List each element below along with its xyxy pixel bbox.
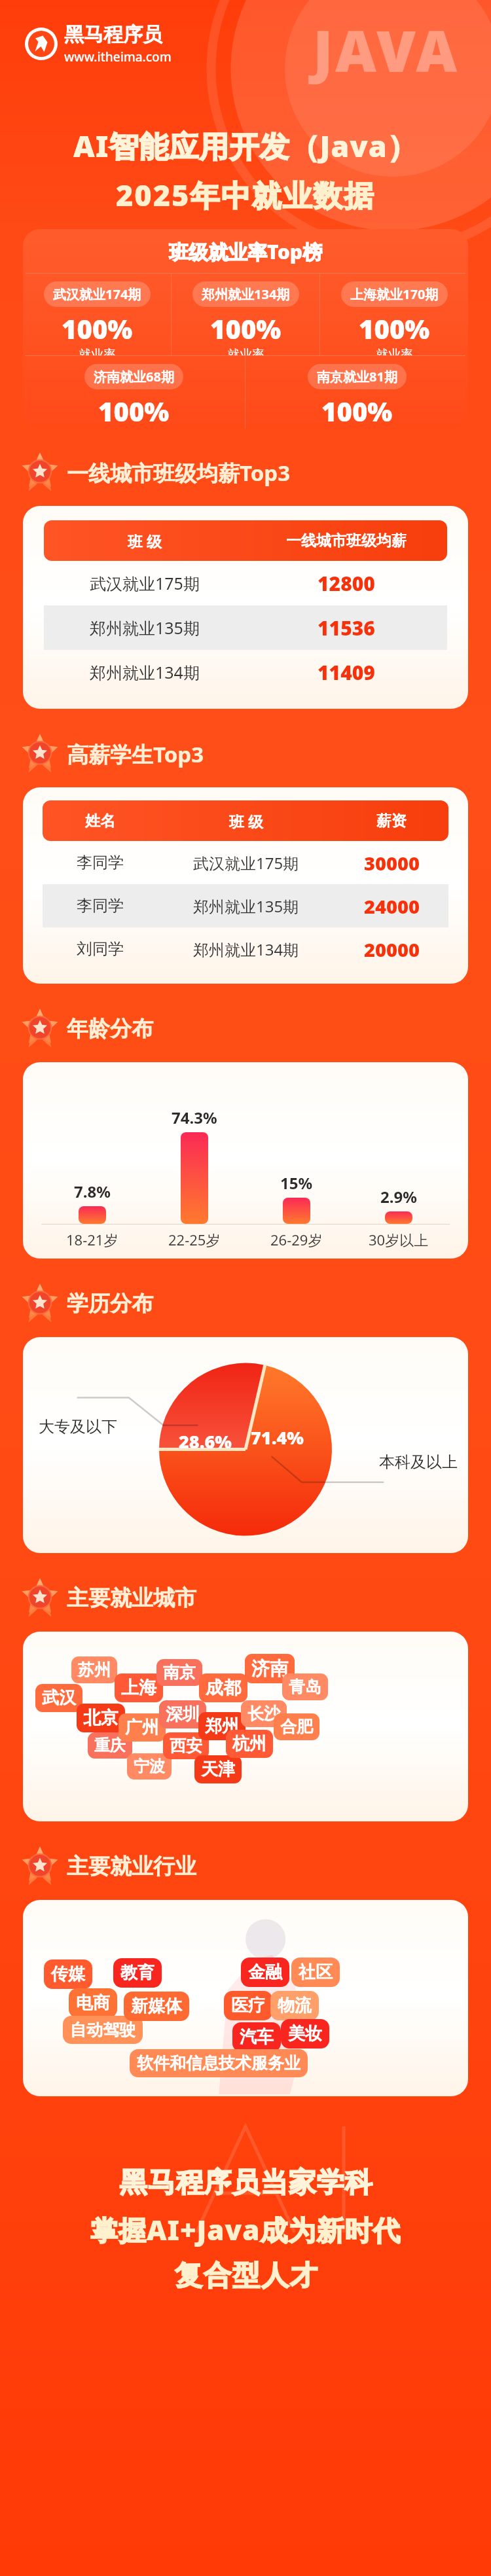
staticText: 金融: [248, 1961, 282, 1983]
button[interactable]: 武汉就业175期: [44, 561, 447, 605]
button[interactable]: 西安: [163, 1732, 209, 1759]
staticText: 11536: [318, 615, 375, 641]
button[interactable]: 刘同学: [43, 927, 448, 971]
button[interactable]: 社区: [291, 1958, 340, 1987]
staticText: 71.4%: [251, 1425, 304, 1450]
button[interactable]: 武汉: [35, 1684, 82, 1712]
staticText: 郑州就业135期: [193, 895, 299, 917]
staticText: 美妆: [288, 2023, 322, 2045]
button[interactable]: 济南就业68期: [23, 356, 245, 429]
button[interactable]: 李同学: [43, 841, 448, 884]
staticText: 郑州就业135期: [90, 617, 200, 639]
button[interactable]: 美妆: [281, 2019, 329, 2048]
staticText: 24000: [364, 893, 420, 919]
staticText: 武汉就业175期: [193, 852, 299, 874]
button[interactable]: 新媒体: [124, 1992, 189, 2021]
staticText: 医疗: [231, 1995, 265, 2016]
staticText: 武汉就业175期: [90, 572, 200, 594]
button[interactable]: 长沙: [241, 1700, 287, 1727]
button[interactable]: 教育: [113, 1958, 162, 1988]
button[interactable]: 杭州: [226, 1730, 273, 1758]
button[interactable]: 电商: [69, 1988, 117, 2018]
button[interactable]: 北京: [77, 1704, 125, 1732]
staticText: 新媒体: [131, 1995, 182, 2017]
staticText: 一线城市班级均薪: [286, 531, 407, 550]
staticText: www.itheima.com: [64, 48, 172, 65]
button[interactable]: 郑州就业135期: [44, 605, 447, 650]
staticText: 年龄分布: [67, 1015, 153, 1043]
staticText: 本科及以上: [379, 1452, 458, 1472]
button[interactable]: 物流: [270, 1991, 319, 2020]
staticText: 就业率: [79, 347, 116, 355]
button[interactable]: 传媒: [44, 1959, 92, 1989]
other: Logo: [25, 27, 58, 60]
button[interactable]: 合肥: [274, 1713, 319, 1740]
staticText: 7.8%: [74, 1181, 111, 1202]
button[interactable]: 医疗: [224, 1991, 272, 2020]
staticText: 姓名: [85, 812, 115, 831]
staticText: 郑州: [205, 1715, 239, 1737]
staticText: 薪资: [376, 812, 407, 831]
staticText: 长沙: [247, 1704, 280, 1724]
staticText: 天津: [201, 1759, 235, 1780]
staticText: 成都: [206, 1677, 241, 1699]
button[interactable]: Logo: [25, 22, 172, 65]
staticText: 青岛: [289, 1677, 321, 1697]
button[interactable]: 李同学: [43, 884, 448, 927]
button[interactable]: 汽车: [232, 2022, 281, 2052]
button[interactable]: 郑州就业134期: [172, 274, 319, 355]
staticText: 2.9%: [380, 1186, 417, 1207]
staticText: 28.6%: [179, 1429, 232, 1454]
button[interactable]: 郑州就业134期: [44, 650, 447, 694]
button[interactable]: 郑州: [198, 1712, 245, 1740]
staticText: 12800: [318, 570, 375, 597]
other: Star badge: [21, 1579, 59, 1617]
button[interactable]: 上海: [115, 1673, 163, 1702]
staticText: 30000: [364, 850, 420, 876]
staticText: 班级就业率Top榜: [169, 238, 323, 265]
staticText: 就业率: [227, 347, 264, 355]
button[interactable]: 广州: [118, 1713, 166, 1742]
staticText: 掌握AI+Java成为新时代: [90, 2211, 401, 2248]
other: Star badge: [21, 1010, 59, 1048]
staticText: 30岁以上: [369, 1230, 429, 1249]
staticText: 郑州就业134期: [193, 939, 299, 960]
staticText: 宁波: [134, 1757, 165, 1776]
button[interactable]: 济南: [245, 1654, 295, 1683]
staticText: 李同学: [77, 853, 124, 872]
staticText: 合肥: [280, 1717, 313, 1737]
staticText: 郑州就业134期: [202, 285, 290, 303]
button[interactable]: 自动驾驶: [63, 2016, 143, 2044]
button[interactable]: 武汉就业174期: [23, 274, 171, 355]
button[interactable]: 南京: [156, 1659, 202, 1686]
staticText: 上海: [121, 1677, 156, 1699]
staticText: 南京: [163, 1662, 196, 1683]
staticText: 11409: [318, 659, 375, 686]
staticText: 汽车: [240, 2026, 274, 2048]
staticText: 100%: [210, 311, 282, 346]
button[interactable]: 重庆: [88, 1732, 132, 1759]
staticText: 100%: [98, 393, 170, 429]
button[interactable]: 青岛: [282, 1673, 328, 1700]
button[interactable]: 软件和信息技术服务业: [130, 2049, 308, 2077]
staticText: 武汉就业174期: [53, 285, 141, 303]
other: Star badge: [21, 454, 59, 492]
button[interactable]: 深圳: [159, 1700, 206, 1728]
staticText: 李同学: [77, 896, 124, 916]
staticText: 大专及以下: [39, 1417, 117, 1437]
button[interactable]: 上海就业170期: [320, 274, 468, 355]
staticText: 黑马程序员: [64, 22, 162, 47]
button[interactable]: 南京就业81期: [245, 356, 468, 429]
button[interactable]: 金融: [241, 1958, 289, 1987]
button[interactable]: 成都: [199, 1673, 247, 1702]
staticText: 物流: [278, 1995, 312, 2016]
button[interactable]: 苏州: [71, 1656, 117, 1683]
staticText: 教育: [120, 1962, 155, 1984]
staticText: 郑州就业134期: [90, 661, 200, 683]
staticText: 重庆: [94, 1736, 126, 1755]
button[interactable]: 宁波: [127, 1753, 172, 1780]
button[interactable]: 天津: [194, 1755, 242, 1783]
staticText: 黑马程序员当家学科: [119, 2166, 373, 2200]
staticText: 武汉: [42, 1687, 76, 1709]
staticText: 深圳: [166, 1704, 200, 1725]
